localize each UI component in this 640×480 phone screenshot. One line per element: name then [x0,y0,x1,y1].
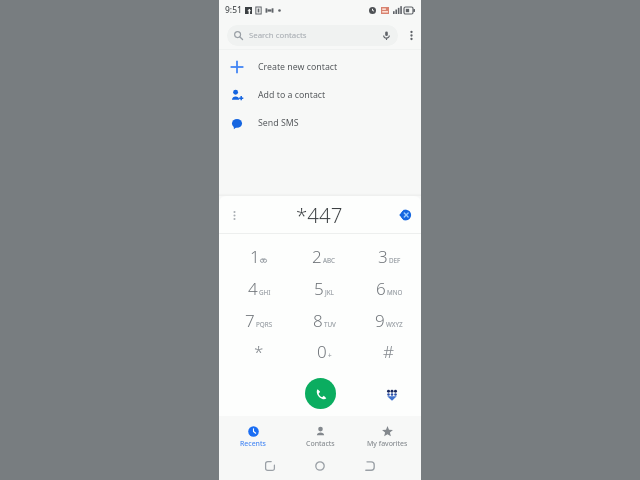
button[interactable]: More options [401,25,421,45]
staticText: WXYZ [386,320,403,329]
button[interactable]: Home [310,456,330,476]
button[interactable]: 4 [226,272,291,304]
button[interactable]: Create new contact [219,53,421,81]
button[interactable]: 6 [356,272,421,304]
staticText: 7 [245,309,255,332]
staticText: GHI [259,288,271,297]
button[interactable]: 0 [291,336,356,367]
button[interactable]: Back [360,456,380,476]
staticText: DEF [389,256,401,265]
button[interactable]: Contacts [287,416,354,452]
button[interactable]: 3 [356,240,421,272]
button[interactable]: My favorites [354,416,421,452]
staticText: 2 [312,245,322,268]
button[interactable]: 7 [226,304,291,336]
staticText: 6 [376,277,386,300]
button[interactable]: Add to a contact [219,81,421,109]
staticText: *447 [296,201,343,229]
staticText: 8 [313,309,323,332]
button[interactable]: Backspace [392,202,418,228]
button[interactable]: Voice search [381,30,392,41]
button[interactable]: Hide dialpad [381,383,403,405]
staticText: * [254,340,264,363]
button[interactable]: Call [305,378,336,409]
button[interactable]: Search contacts [227,25,398,46]
staticText: JKL [325,288,334,297]
staticText: 5 [314,277,324,300]
button[interactable]: 2 [291,240,356,272]
staticText: 4 [248,277,258,300]
button[interactable]: 9 [356,304,421,336]
staticText: 9:51 [225,4,242,16]
staticText: 1 [250,245,260,268]
button[interactable]: Dialpad options [221,202,247,228]
staticText: Add to a contact [258,89,326,101]
button[interactable]: 5 [291,272,356,304]
staticText: Create new contact [258,61,338,73]
button[interactable]: Send SMS [219,109,421,137]
staticText: Contacts [306,439,335,449]
staticText: 0 [317,340,327,363]
staticText: # [383,340,394,363]
staticText: Recents [240,439,266,449]
staticText: + [328,351,332,360]
button[interactable]: * [226,336,291,367]
button[interactable]: 1 [226,240,291,272]
staticText: My favorites [367,439,408,449]
staticText: ABC [323,256,336,265]
staticText: PQRS [256,320,273,329]
button[interactable]: Recents [219,416,287,452]
button[interactable]: 8 [291,304,356,336]
staticText: 3 [378,245,388,268]
staticText: Search contacts [249,30,307,41]
staticText: MNO [387,288,403,297]
staticText: 9 [375,309,385,332]
button[interactable]: # [356,336,421,367]
button[interactable]: Recent apps [260,456,280,476]
staticText: TUV [324,320,336,329]
staticText: Send SMS [258,117,299,129]
